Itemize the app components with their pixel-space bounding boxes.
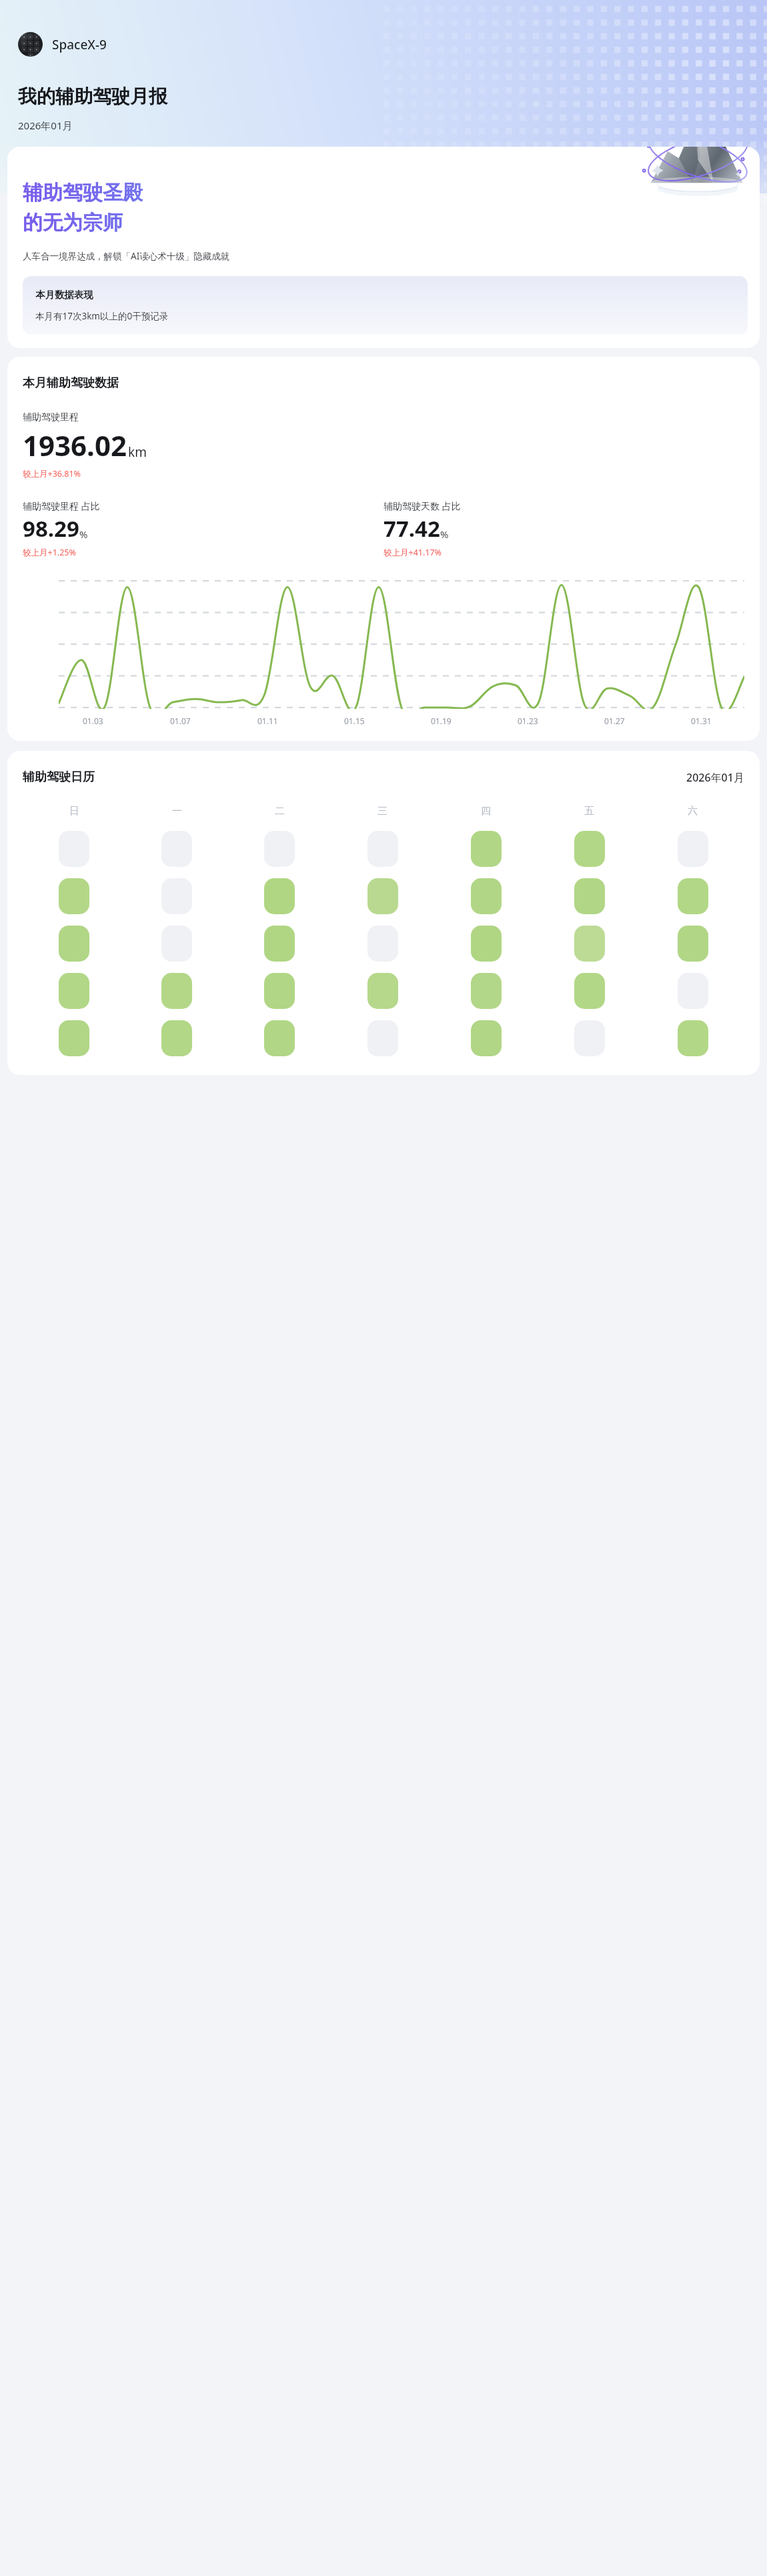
button[interactable] — [574, 1020, 605, 1056]
staticText: 三 — [377, 805, 388, 818]
button[interactable] — [367, 926, 398, 962]
button[interactable] — [471, 926, 502, 962]
staticText: 01.19 — [431, 716, 452, 726]
button[interactable] — [678, 1020, 708, 1056]
button[interactable] — [59, 926, 89, 962]
button[interactable] — [59, 831, 89, 867]
button[interactable] — [471, 831, 502, 867]
staticText: 辅助驾驶天数 占比 — [383, 499, 461, 512]
button[interactable]: 辅助驾驶圣殿 — [7, 147, 760, 348]
staticText: 辅助驾驶里程 占比 — [23, 499, 100, 512]
staticText: 本月辅助驾驶数据 — [23, 375, 119, 391]
staticText: 01.11 — [257, 716, 278, 726]
button[interactable] — [367, 878, 398, 914]
staticText: 二 — [275, 805, 285, 818]
button[interactable] — [264, 878, 295, 914]
button[interactable]: Profile avatar — [17, 31, 108, 58]
staticText: 辅助驾驶里程 — [23, 411, 79, 423]
staticText: 1936.02 — [23, 426, 127, 464]
staticText: 98.29 — [23, 513, 79, 543]
button[interactable] — [161, 878, 192, 914]
staticText: 四 — [481, 805, 491, 818]
button[interactable] — [161, 1020, 192, 1056]
button[interactable] — [574, 926, 605, 962]
staticText: 01.27 — [604, 716, 625, 726]
staticText: 日 — [69, 805, 79, 818]
staticText: % — [440, 527, 449, 541]
button[interactable] — [264, 1020, 295, 1056]
staticText: 较上月+1.25% — [23, 547, 76, 558]
button[interactable] — [471, 878, 502, 914]
staticText: 01.03 — [83, 716, 103, 726]
staticText: 人车合一境界达成，解锁「AI读心术十级」隐藏成就 — [23, 250, 230, 262]
button[interactable] — [161, 973, 192, 1009]
button[interactable] — [678, 831, 708, 867]
staticText: km — [128, 443, 147, 461]
button[interactable]: 本月辅助驾驶数据 — [7, 357, 760, 741]
staticText: 五 — [584, 805, 594, 818]
button[interactable] — [367, 831, 398, 867]
staticText: 2026年01月 — [686, 770, 744, 785]
staticText: 2026年01月 — [18, 119, 73, 132]
staticText: SpaceX-9 — [52, 36, 107, 53]
staticText: 01.23 — [518, 716, 538, 726]
button[interactable] — [678, 878, 708, 914]
button[interactable]: 本月数据表现 — [23, 276, 748, 335]
button[interactable] — [264, 926, 295, 962]
button[interactable] — [161, 926, 192, 962]
button[interactable]: 辅助驾驶日历 — [7, 751, 760, 1075]
staticText: 77.42 — [383, 513, 440, 543]
staticText: 01.31 — [691, 716, 712, 726]
button[interactable] — [367, 1020, 398, 1056]
staticText: 较上月+36.81% — [23, 468, 81, 479]
button[interactable]: 辅助驾驶天数 占比 — [383, 499, 744, 558]
staticText: 我的辅助驾驶月报 — [18, 85, 167, 108]
staticText: 01.07 — [170, 716, 191, 726]
staticText: 较上月+41.17% — [383, 547, 442, 558]
button[interactable]: 辅助驾驶里程 占比 — [23, 499, 383, 558]
button[interactable] — [471, 973, 502, 1009]
button[interactable] — [367, 973, 398, 1009]
staticText: 本月有17次3km以上的0干预记录 — [35, 310, 169, 322]
staticText: 辅助驾驶圣殿 — [23, 180, 143, 205]
button[interactable] — [471, 1020, 502, 1056]
button[interactable] — [264, 973, 295, 1009]
staticText: 六 — [688, 805, 698, 818]
button[interactable] — [678, 973, 708, 1009]
other: Profile avatar — [18, 32, 43, 57]
button[interactable] — [59, 973, 89, 1009]
button[interactable] — [574, 831, 605, 867]
button[interactable] — [161, 831, 192, 867]
staticText: 的无为宗师 — [23, 210, 123, 235]
staticText: 辅助驾驶日历 — [23, 770, 95, 785]
staticText: 一 — [172, 805, 182, 818]
button[interactable] — [264, 831, 295, 867]
button[interactable] — [59, 878, 89, 914]
staticText: 01.15 — [344, 716, 365, 726]
button[interactable] — [574, 878, 605, 914]
button[interactable] — [59, 1020, 89, 1056]
staticText: % — [79, 527, 88, 541]
button[interactable] — [574, 973, 605, 1009]
button[interactable] — [678, 926, 708, 962]
staticText: 本月数据表现 — [35, 289, 93, 301]
